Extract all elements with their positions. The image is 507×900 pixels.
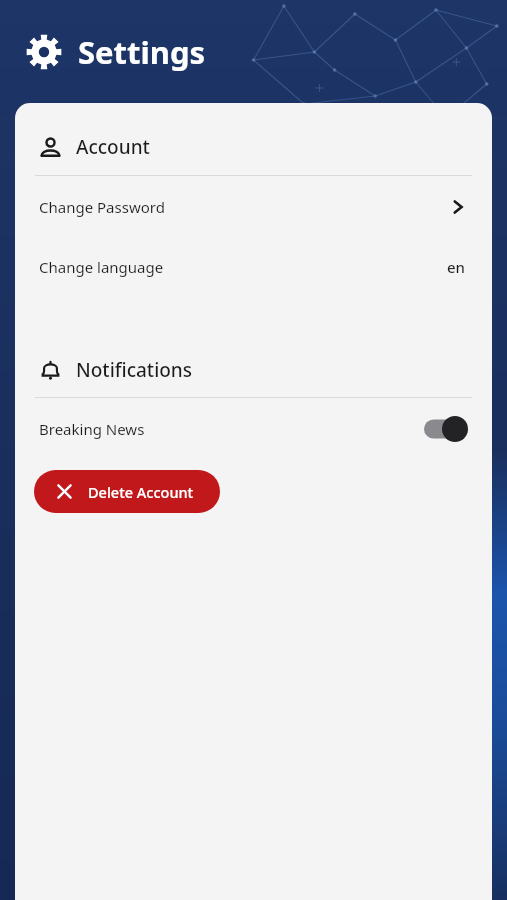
button[interactable]: Change language (15, 238, 492, 296)
other: Settings (26, 34, 62, 70)
button[interactable]: Delete Account (34, 470, 220, 513)
other: Change Password (448, 197, 468, 217)
staticText: Delete Account (88, 482, 194, 502)
button[interactable]: Breaking News (15, 398, 492, 460)
staticText: Account (76, 134, 150, 160)
staticText: en (447, 257, 466, 277)
button[interactable]: Breaking News toggle (424, 416, 468, 442)
staticText: Change language (39, 257, 164, 277)
staticText: Notifications (76, 357, 193, 383)
staticText: Breaking News (39, 419, 145, 439)
button[interactable]: Change Password (15, 176, 492, 238)
staticText: Change Password (39, 197, 165, 217)
staticText: Settings (78, 31, 206, 73)
